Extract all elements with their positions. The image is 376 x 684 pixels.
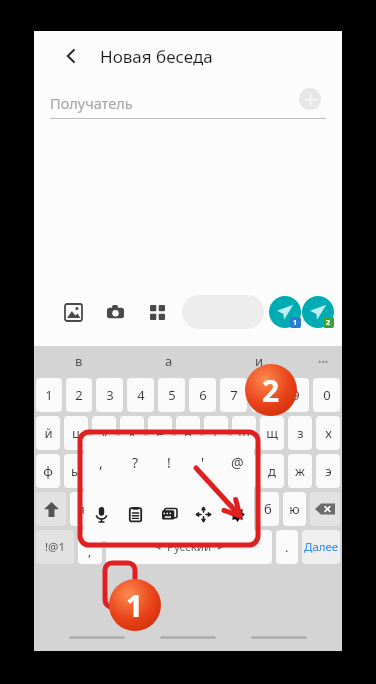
- button[interactable]: а: [124, 346, 214, 376]
- button[interactable]: Message input: [182, 295, 264, 329]
- staticText: @: [231, 453, 244, 472]
- button[interactable]: Send SIM 1: [269, 296, 301, 328]
- button[interactable]: ц: [64, 416, 88, 450]
- button[interactable]: 4: [127, 378, 154, 412]
- button[interactable]: ,: [84, 436, 118, 488]
- button[interactable]: и: [214, 346, 304, 376]
- staticText: 5: [168, 386, 176, 404]
- button[interactable]: Move keyboard: [186, 488, 220, 541]
- button[interactable]: Camera: [100, 297, 130, 327]
- staticText: с: [130, 500, 137, 518]
- button[interactable]: .: [276, 530, 298, 564]
- staticText: з: [297, 424, 304, 442]
- button[interactable]: Voice input: [84, 488, 118, 541]
- button[interactable]: 1: [36, 378, 62, 412]
- button[interactable]: 5: [158, 378, 185, 412]
- staticText: 2: [326, 318, 331, 328]
- button[interactable]: д: [260, 454, 284, 488]
- button[interactable]: у: [92, 416, 116, 450]
- button[interactable]: ш: [232, 416, 256, 450]
- button[interactable]: Settings: [220, 488, 254, 541]
- button[interactable]: ,: [78, 530, 102, 564]
- button[interactable]: и: [175, 492, 198, 526]
- button[interactable]: в: [92, 454, 116, 488]
- button[interactable]: ф: [36, 454, 60, 488]
- staticText: ?: [132, 453, 139, 472]
- button[interactable]: л: [232, 454, 256, 488]
- button[interactable]: ч: [96, 492, 118, 526]
- button[interactable]: к: [120, 416, 144, 450]
- staticText: Получатель: [50, 93, 133, 113]
- button[interactable]: Далее: [302, 530, 340, 564]
- button[interactable]: ?: [118, 436, 152, 488]
- staticText: 3: [106, 386, 114, 404]
- button[interactable]: щ: [260, 416, 284, 450]
- staticText: 1: [45, 386, 53, 404]
- button[interactable]: н: [176, 416, 200, 450]
- staticText: у: [101, 424, 108, 442]
- button[interactable]: 7: [220, 378, 247, 412]
- button[interactable]: Space: [106, 530, 272, 564]
- staticText: 2: [75, 386, 83, 404]
- button[interactable]: Keyboard mode: [152, 488, 186, 541]
- button[interactable]: п: [148, 454, 172, 488]
- button[interactable]: 8: [251, 378, 278, 412]
- button[interactable]: с: [122, 492, 144, 526]
- button[interactable]: 6: [189, 378, 216, 412]
- button[interactable]: х: [316, 416, 340, 450]
- button[interactable]: ж: [288, 454, 312, 488]
- staticText: г: [213, 424, 219, 442]
- button[interactable]: б: [256, 492, 279, 526]
- button[interactable]: ': [186, 436, 220, 488]
- button[interactable]: Add recipient: [299, 88, 321, 110]
- button[interactable]: м: [148, 492, 171, 526]
- staticText: л: [240, 462, 248, 480]
- button[interactable]: 3: [96, 378, 123, 412]
- button[interactable]: й: [36, 416, 60, 450]
- staticText: ,: [88, 543, 92, 559]
- button[interactable]: ы: [64, 454, 88, 488]
- staticText: •••: [318, 355, 329, 367]
- button[interactable]: More apps: [142, 297, 172, 327]
- button[interactable]: в: [34, 346, 124, 376]
- button[interactable]: Key: [36, 492, 66, 526]
- button[interactable]: а: [120, 454, 144, 488]
- staticText: ч: [103, 500, 111, 518]
- button[interactable]: т: [202, 492, 225, 526]
- button[interactable]: о: [204, 454, 228, 488]
- staticText: Далее: [304, 539, 339, 555]
- button[interactable]: г: [204, 416, 228, 450]
- button[interactable]: Key: [310, 492, 340, 526]
- button[interactable]: @: [220, 436, 254, 488]
- staticText: ю: [289, 500, 300, 518]
- button[interactable]: 0: [313, 378, 340, 412]
- staticText: 4: [137, 386, 145, 404]
- button[interactable]: 9: [282, 378, 309, 412]
- button[interactable]: ь: [229, 492, 252, 526]
- staticText: к: [129, 424, 136, 442]
- staticText: ы: [71, 462, 81, 480]
- button[interactable]: з: [288, 416, 312, 450]
- button[interactable]: р: [176, 454, 200, 488]
- staticText: ц: [72, 424, 80, 442]
- staticText: х: [325, 424, 332, 442]
- button[interactable]: !: [152, 436, 186, 488]
- button[interactable]: More suggestions: [304, 346, 342, 376]
- button[interactable]: ю: [283, 492, 306, 526]
- button[interactable]: е: [148, 416, 172, 450]
- staticText: а: [128, 462, 136, 480]
- button[interactable]: Back: [56, 41, 86, 71]
- button[interactable]: Clipboard: [118, 488, 152, 541]
- button[interactable]: я: [70, 492, 92, 526]
- staticText: Русский: [167, 539, 212, 555]
- staticText: е: [156, 424, 164, 442]
- button[interactable]: Key: [36, 530, 74, 564]
- button[interactable]: 2: [66, 378, 92, 412]
- staticText: ж: [295, 462, 305, 480]
- button[interactable]: Gallery: [58, 297, 88, 327]
- button[interactable]: э: [316, 454, 340, 488]
- staticText: щ: [266, 424, 278, 442]
- button[interactable]: Send SIM 2: [302, 296, 334, 328]
